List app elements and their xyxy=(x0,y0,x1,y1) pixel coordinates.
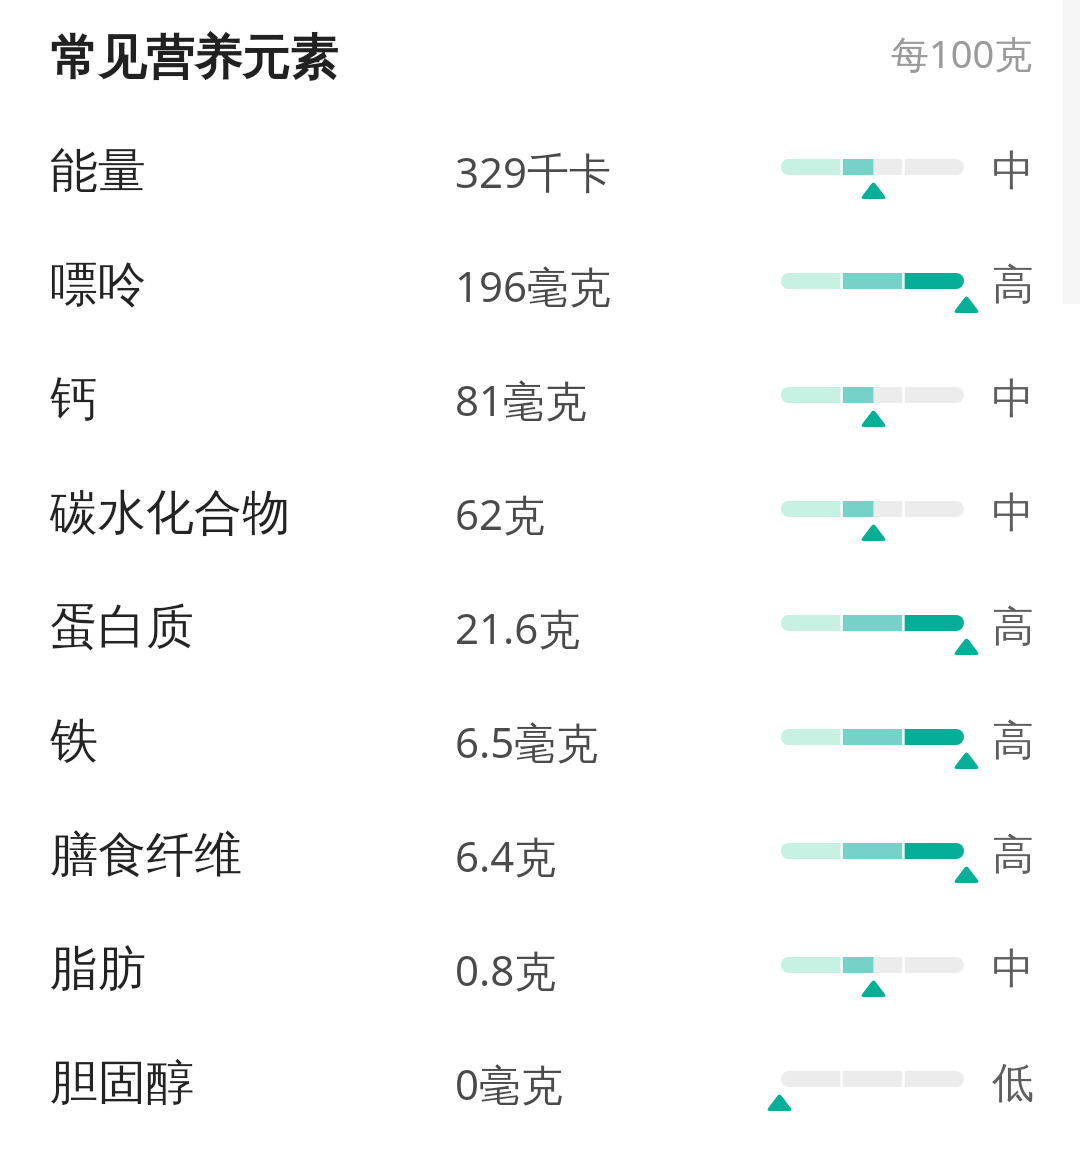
button[interactable]: 能量 xyxy=(0,114,1080,228)
staticText: 膳食纤维 xyxy=(50,825,242,885)
other: 铁含量高 xyxy=(781,729,964,745)
staticText: 胆固醇 xyxy=(50,1053,194,1113)
staticText: 中 xyxy=(992,487,1034,540)
button[interactable]: 铁 xyxy=(0,684,1080,798)
staticText: 蛋白质 xyxy=(50,597,194,657)
button[interactable]: 脂肪 xyxy=(0,912,1080,1026)
staticText: 每100克 xyxy=(891,27,1033,79)
staticText: 21.6克 xyxy=(455,599,581,656)
other: 能量含量中 xyxy=(781,159,964,175)
button[interactable]: 胆固醇 xyxy=(0,1026,1080,1140)
other: 钙含量中 xyxy=(781,387,964,403)
other: 膳食纤维含量高 xyxy=(781,843,964,859)
staticText: 6.5毫克 xyxy=(455,713,599,770)
staticText: 嘌呤 xyxy=(50,255,146,315)
staticText: 常见营养元素 xyxy=(50,28,338,88)
staticText: 高 xyxy=(992,715,1034,768)
button[interactable]: 嘌呤 xyxy=(0,228,1080,342)
other: 蛋白质含量高 xyxy=(781,615,964,631)
staticText: 329千卡 xyxy=(455,143,612,200)
button[interactable]: 蛋白质 xyxy=(0,570,1080,684)
staticText: 高 xyxy=(992,259,1034,312)
staticText: 高 xyxy=(992,829,1034,882)
staticText: 中 xyxy=(992,145,1034,198)
staticText: 0.8克 xyxy=(455,941,557,998)
button[interactable]: 碳水化合物 xyxy=(0,456,1080,570)
other: 脂肪含量中 xyxy=(781,957,964,973)
staticText: 高 xyxy=(992,601,1034,654)
staticText: 81毫克 xyxy=(455,371,588,428)
button[interactable]: 膳食纤维 xyxy=(0,798,1080,912)
staticText: 能量 xyxy=(50,141,146,201)
other: 胆固醇含量低 xyxy=(781,1071,964,1087)
other: 嘌呤含量高 xyxy=(781,273,964,289)
button[interactable]: 钙 xyxy=(0,342,1080,456)
staticText: 低 xyxy=(992,1057,1034,1110)
staticText: 脂肪 xyxy=(50,939,146,999)
staticText: 中 xyxy=(992,943,1034,996)
staticText: 中 xyxy=(992,373,1034,426)
staticText: 碳水化合物 xyxy=(50,483,290,543)
staticText: 62克 xyxy=(455,485,546,542)
other: 碳水化合物含量中 xyxy=(781,501,964,517)
staticText: 196毫克 xyxy=(455,257,612,314)
staticText: 钙 xyxy=(50,369,98,429)
staticText: 6.4克 xyxy=(455,827,557,884)
staticText: 0毫克 xyxy=(455,1055,564,1112)
staticText: 铁 xyxy=(50,711,98,771)
